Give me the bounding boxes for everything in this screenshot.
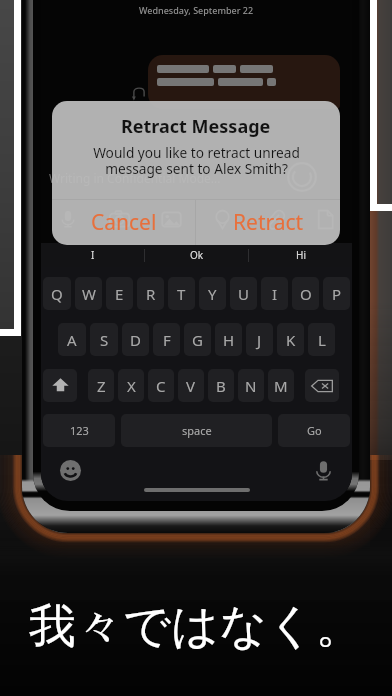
button[interactable]: Document: [310, 204, 340, 234]
staticText: 我々ではなく。: [29, 597, 363, 656]
button[interactable]: B: [208, 369, 234, 402]
staticText: X: [127, 376, 136, 396]
button[interactable]: W: [75, 277, 102, 310]
button[interactable]: Dictate: [310, 457, 336, 483]
button[interactable]: Go: [278, 414, 350, 447]
button[interactable]: 123: [43, 414, 115, 447]
button[interactable]: L: [308, 323, 335, 356]
staticText: S: [100, 330, 109, 350]
button[interactable]: Z: [88, 369, 114, 402]
button[interactable]: space: [121, 414, 272, 447]
staticText: H: [223, 330, 235, 350]
staticText: Y: [208, 284, 217, 304]
staticText: J: [257, 330, 262, 350]
staticText: O: [300, 284, 312, 304]
staticText: Retract: [233, 208, 304, 237]
staticText: V: [186, 376, 196, 396]
staticText: L: [318, 330, 326, 350]
staticText: U: [238, 284, 249, 304]
button[interactable]: Camera: [104, 204, 134, 234]
staticText: C: [156, 376, 166, 396]
button[interactable]: Y: [199, 277, 226, 310]
button[interactable]: J: [246, 323, 273, 356]
staticText: space: [182, 423, 212, 438]
staticText: K: [286, 330, 296, 350]
button[interactable]: Shift: [43, 369, 77, 402]
button[interactable]: V: [178, 369, 204, 402]
button[interactable]: F: [153, 323, 180, 356]
button[interactable]: E: [106, 277, 133, 310]
staticText: A: [67, 330, 77, 350]
button[interactable]: N: [238, 369, 264, 402]
button[interactable]: Cancel: [52, 200, 195, 245]
staticText: P: [332, 284, 342, 304]
staticText: F: [163, 330, 171, 350]
button[interactable]: U: [230, 277, 257, 310]
button[interactable]: T: [168, 277, 195, 310]
staticText: Retract Message: [121, 114, 271, 139]
staticText: B: [216, 376, 226, 396]
button[interactable]: H: [215, 323, 242, 356]
staticText: N: [245, 376, 257, 396]
button[interactable]: S: [90, 323, 118, 356]
staticText: Z: [97, 376, 106, 396]
staticText: Hi: [296, 248, 306, 262]
button[interactable]: Backspace: [305, 369, 339, 402]
button[interactable]: P: [323, 277, 350, 310]
staticText: W: [82, 284, 96, 304]
button[interactable]: K: [277, 323, 304, 356]
button[interactable]: D: [122, 323, 149, 356]
button[interactable]: I: [41, 243, 144, 267]
staticText: I: [272, 284, 278, 304]
button[interactable]: Hi: [249, 243, 352, 267]
staticText: T: [177, 284, 186, 304]
staticText: 123: [70, 423, 89, 438]
staticText: Writing in Confidential Mode...: [49, 170, 221, 186]
button[interactable]: Retract: [196, 200, 340, 245]
staticText: Wednesday, September 22: [139, 4, 254, 16]
staticText: G: [192, 330, 203, 350]
staticText: D: [130, 330, 141, 350]
button[interactable]: Location: [207, 204, 237, 234]
staticText: M: [274, 376, 288, 396]
staticText: Would you like to retract unread message…: [93, 143, 300, 178]
staticText: Go: [307, 423, 322, 438]
button[interactable]: Q: [43, 277, 71, 310]
button[interactable]: I: [261, 277, 288, 310]
button[interactable]: C: [148, 369, 174, 402]
button[interactable]: Emoji keyboard: [57, 457, 83, 483]
button[interactable]: X: [118, 369, 144, 402]
staticText: R: [146, 284, 156, 304]
staticText: Q: [51, 284, 63, 304]
button[interactable]: A: [58, 323, 86, 356]
button[interactable]: Attach file: [259, 204, 289, 234]
button[interactable]: Ok: [145, 243, 248, 267]
button[interactable]: G: [184, 323, 211, 356]
staticText: I: [91, 248, 95, 262]
button[interactable]: O: [292, 277, 319, 310]
button[interactable]: M: [268, 369, 294, 402]
staticText: Ok: [190, 248, 204, 262]
staticText: Cancel: [91, 208, 157, 237]
button[interactable]: R: [137, 277, 164, 310]
staticText: E: [115, 284, 124, 304]
